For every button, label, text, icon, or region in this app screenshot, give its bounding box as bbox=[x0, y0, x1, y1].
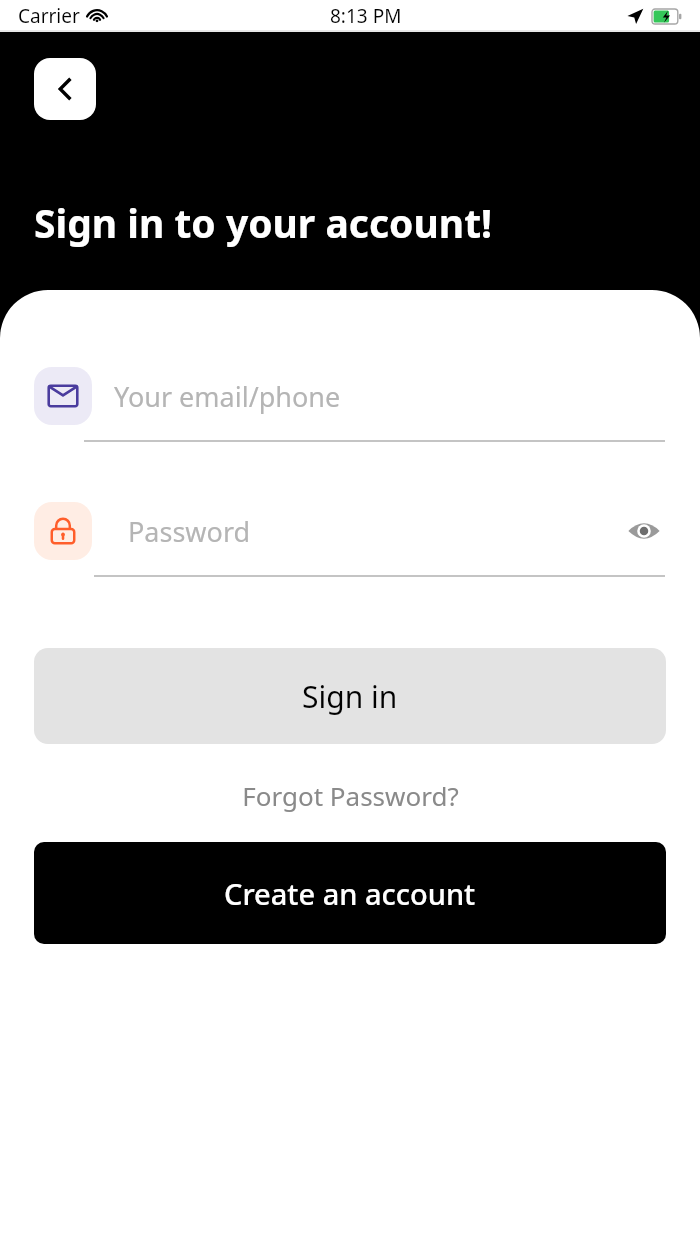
button[interactable]: Password bbox=[34, 502, 666, 560]
staticText: Sign in to your account! bbox=[34, 196, 493, 249]
staticText: Create an account bbox=[224, 874, 476, 913]
staticText: 8:13 PM bbox=[330, 3, 402, 29]
staticText: Carrier bbox=[18, 3, 80, 29]
button[interactable]: Create an account bbox=[34, 842, 666, 944]
button[interactable]: Show password bbox=[622, 509, 666, 553]
button[interactable]: Sign in bbox=[34, 648, 666, 744]
staticText: Your email/phone bbox=[114, 378, 341, 415]
button[interactable]: Back bbox=[34, 58, 96, 120]
button[interactable]: Your email/phone bbox=[34, 367, 666, 425]
staticText: Sign in bbox=[302, 676, 398, 717]
staticText: Forgot Password? bbox=[242, 778, 459, 813]
staticText: Password bbox=[128, 513, 251, 550]
button[interactable]: Forgot Password? bbox=[230, 772, 471, 819]
